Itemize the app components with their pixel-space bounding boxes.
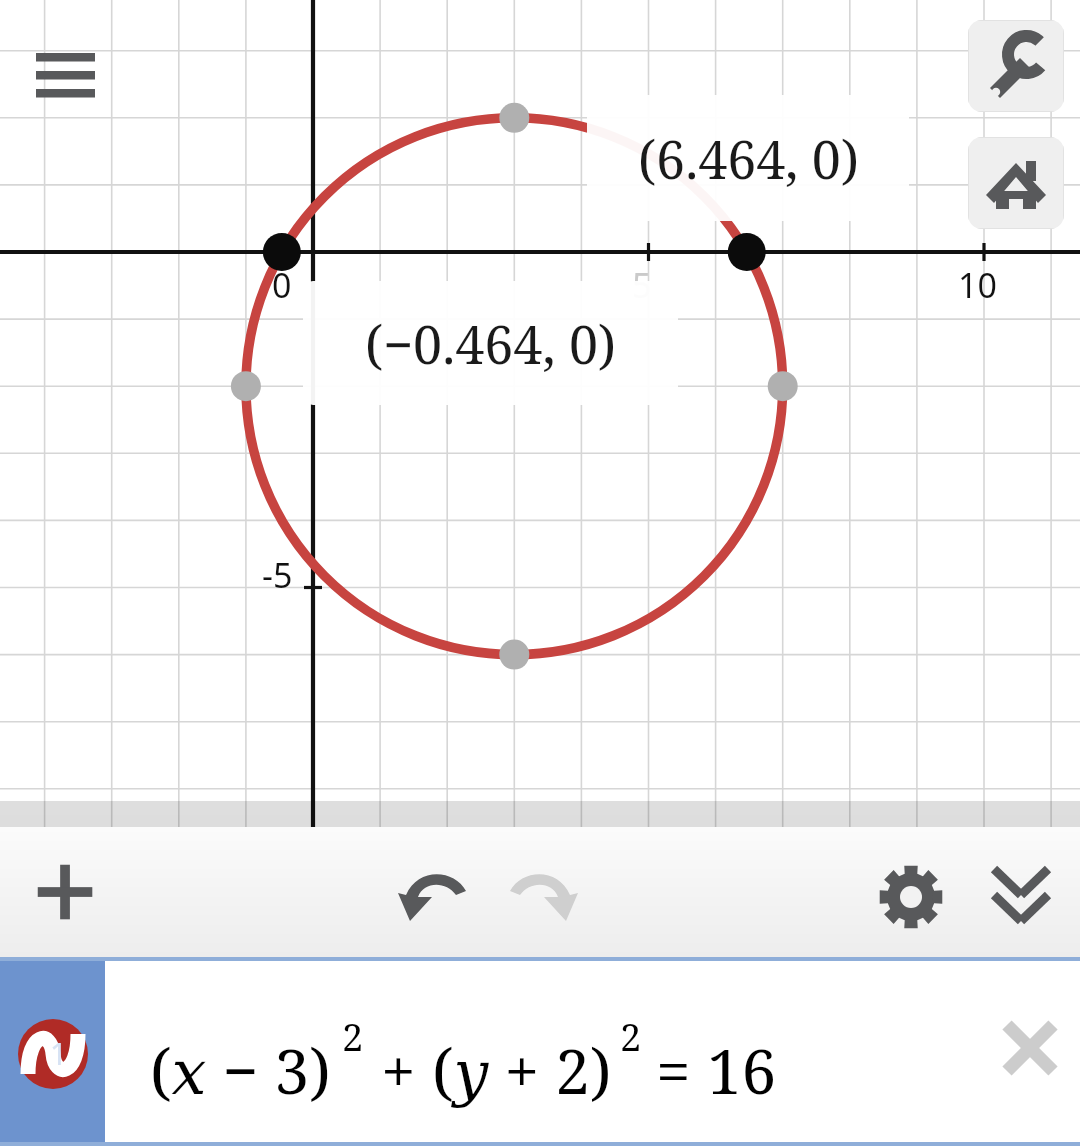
button[interactable]: (𝑥 − 3) bbox=[105, 961, 1080, 1142]
staticText: + (𝑦 + 2) bbox=[365, 1028, 612, 1112]
staticText: (𝑥 − 3) bbox=[150, 1028, 331, 1112]
staticText: 2 bbox=[620, 1010, 642, 1062]
button[interactable]: (−0.464, 0) bbox=[303, 281, 678, 405]
button[interactable]: Delete expression bbox=[985, 1003, 1075, 1093]
button[interactable]: Graph settings bbox=[872, 859, 950, 937]
staticText: (6.464, 0) bbox=[638, 123, 859, 194]
staticText: (−0.464, 0) bbox=[365, 308, 616, 379]
button[interactable]: Undo bbox=[396, 859, 474, 937]
staticText: 5 bbox=[632, 262, 652, 308]
button[interactable]: Collapse bbox=[982, 859, 1060, 937]
staticText: 1 bbox=[50, 1033, 68, 1074]
button[interactable]: Redo bbox=[502, 859, 580, 937]
button[interactable]: 1 bbox=[0, 961, 105, 1142]
button[interactable]: Menu bbox=[20, 36, 112, 110]
button[interactable]: Home bbox=[968, 137, 1064, 229]
button[interactable]: Add expression bbox=[28, 855, 104, 931]
staticText: 2 bbox=[342, 1010, 364, 1062]
button[interactable]: Settings bbox=[968, 20, 1064, 112]
staticText: = 16 bbox=[640, 1028, 777, 1112]
staticText: 10 bbox=[958, 262, 997, 308]
staticText: 0 bbox=[272, 262, 292, 308]
button[interactable]: (6.464, 0) bbox=[587, 95, 909, 221]
staticText: -5 bbox=[262, 552, 293, 598]
